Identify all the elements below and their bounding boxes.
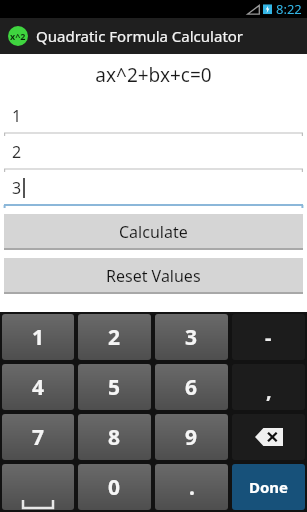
staticText: , [266,377,272,404]
staticText: 4 [32,373,45,402]
button[interactable]: 2 [0,136,307,172]
staticText: Quadratic Formula Calculator [36,26,244,46]
staticText: 9 [185,423,198,452]
staticText: Reset Values [106,265,201,287]
staticText: ax^2+bx+c=0 [0,62,307,88]
staticText: 3 [185,323,198,352]
staticText: 2 [108,323,121,352]
staticText: 2 [12,141,22,163]
button[interactable]: 4 [2,364,74,410]
staticText: 7 [32,423,45,452]
staticText: 8 [108,423,121,452]
staticText: 8:22 [276,0,302,18]
staticText: 1 [12,105,22,127]
button[interactable]: 7 [2,414,74,460]
button[interactable]: Comma [232,364,305,410]
button[interactable]: 1 [0,100,307,136]
button[interactable]: 1 [2,314,74,360]
button[interactable]: Calculate [4,214,303,250]
button[interactable]: Backspace [232,414,305,460]
button[interactable]: 2 [78,314,151,360]
button[interactable]: 5 [78,364,151,410]
staticText: 3 [12,177,22,199]
button[interactable]: Space [2,464,74,510]
button[interactable]: 8 [78,414,151,460]
button[interactable]: 3 [155,314,228,360]
staticText: - [265,324,272,351]
button[interactable]: 6 [155,364,228,410]
button[interactable]: . [155,464,228,510]
button[interactable]: Reset Values [4,258,303,294]
button[interactable]: 0 [78,464,151,510]
staticText: 1 [32,323,45,352]
staticText: . [189,473,195,502]
staticText: x^2 [10,30,26,42]
button[interactable]: 9 [155,414,228,460]
button[interactable]: Done [232,464,305,510]
staticText: Calculate [119,221,188,243]
staticText: 0 [108,473,121,502]
staticText: 6 [185,373,198,402]
button[interactable]: Minus [232,314,305,360]
staticText: Done [249,477,289,497]
staticText: 5 [108,373,121,402]
button[interactable]: 3 [0,172,307,208]
